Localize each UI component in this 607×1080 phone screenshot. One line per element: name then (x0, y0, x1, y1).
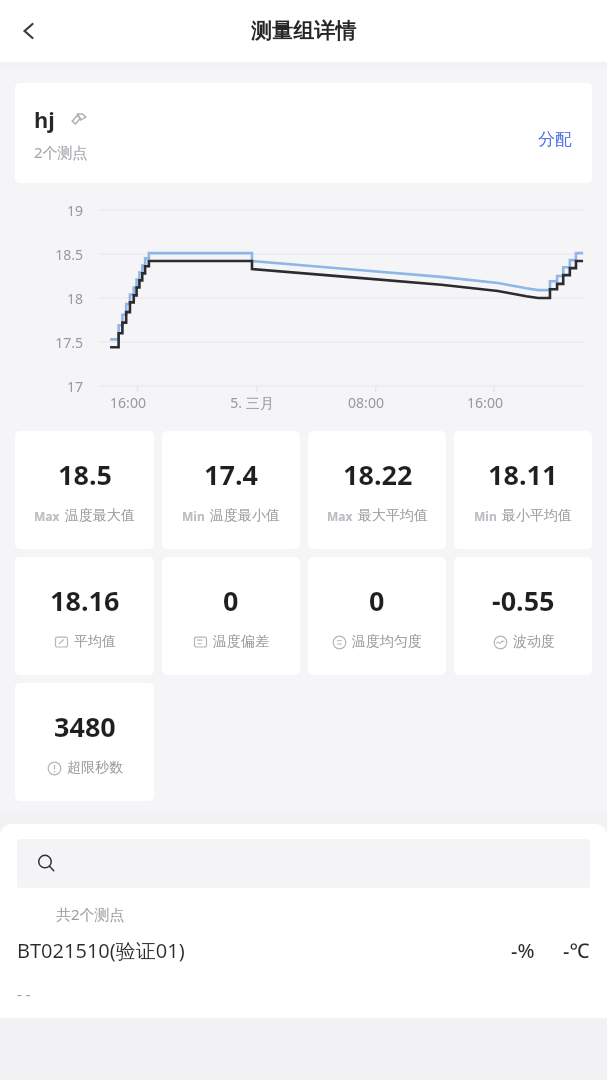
button[interactable]: 17.4 (162, 431, 300, 549)
staticText: 18.11 (488, 456, 558, 493)
staticText: 2个测点 (34, 142, 88, 162)
staticText: 3480 (54, 708, 116, 745)
staticText: 0 (223, 582, 239, 619)
staticText: 18.5 (15, 245, 83, 264)
staticText: Max (34, 508, 60, 524)
button[interactable]: 18.16 (15, 557, 154, 675)
staticText: - - (17, 984, 31, 1004)
staticText: hj (34, 104, 55, 134)
staticText: Min (474, 508, 497, 524)
staticText: 18.22 (343, 456, 413, 493)
button[interactable]: -0.55 (454, 557, 592, 675)
staticText: 超限秒数 (67, 759, 123, 777)
button[interactable]: 分配 (532, 125, 578, 154)
button[interactable]: BT021510(验证01) (0, 937, 607, 964)
button[interactable]: 3480 (15, 683, 154, 801)
staticText: 08:00 (348, 393, 384, 412)
button[interactable]: hj (15, 83, 592, 183)
staticText: 17 (15, 377, 83, 396)
button[interactable]: 0 (162, 557, 300, 675)
staticText: 温度均匀度 (352, 633, 422, 651)
staticText: Max (327, 508, 353, 524)
button[interactable]: 18.5 (15, 431, 154, 549)
staticText: 最小平均值 (502, 507, 572, 525)
staticText: 温度偏差 (213, 633, 269, 651)
staticText: 共2个测点 (56, 904, 125, 924)
staticText: 分配 (538, 129, 572, 150)
staticText: 16:00 (110, 393, 146, 412)
staticText: 18 (15, 289, 83, 308)
button[interactable]: Back (6, 8, 52, 54)
staticText: 平均值 (74, 633, 116, 651)
staticText: 19 (15, 201, 83, 220)
staticText: 18.16 (50, 582, 120, 619)
staticText: -% (511, 937, 535, 964)
button[interactable]: Search (17, 839, 590, 888)
staticText: 18.5 (58, 456, 112, 493)
staticText: 温度最大值 (65, 507, 135, 525)
staticText: 5. 三月 (230, 393, 274, 412)
other: Search (37, 854, 56, 873)
staticText: 最大平均值 (358, 507, 428, 525)
staticText: Min (182, 508, 205, 524)
button[interactable]: 18.22 (308, 431, 446, 549)
button[interactable]: 18.11 (454, 431, 592, 549)
staticText: 波动度 (513, 633, 555, 651)
staticText: 16:00 (467, 393, 503, 412)
staticText: 17.4 (204, 456, 258, 493)
staticText: 温度最小值 (210, 507, 280, 525)
button[interactable]: 0 (308, 557, 446, 675)
staticText: 测量组详情 (251, 18, 356, 44)
staticText: 17.5 (15, 333, 83, 352)
staticText: 0 (369, 582, 385, 619)
staticText: -0.55 (492, 582, 555, 619)
staticText: -℃ (563, 937, 590, 964)
staticText: BT021510(验证01) (17, 937, 185, 964)
